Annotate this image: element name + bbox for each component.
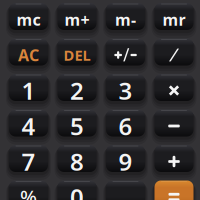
staticText: % xyxy=(20,184,37,200)
staticText: 0 xyxy=(70,181,84,200)
staticText: 2 xyxy=(70,75,84,106)
button[interactable]: 9 xyxy=(106,148,145,175)
staticText: DEL xyxy=(63,45,90,65)
button[interactable]: 7 xyxy=(9,148,48,175)
button[interactable]: . xyxy=(106,183,145,200)
staticText: 4 xyxy=(21,110,35,142)
staticText: 3 xyxy=(118,75,132,106)
button[interactable]: m- xyxy=(106,6,145,33)
button[interactable]: mc xyxy=(9,6,48,33)
button[interactable]: 5 xyxy=(57,112,96,139)
staticText: 1 xyxy=(21,75,35,106)
button[interactable]: 3 xyxy=(106,77,145,104)
button[interactable]: 2 xyxy=(57,77,96,104)
staticText: m- xyxy=(115,9,136,30)
button[interactable]: Divide xyxy=(154,41,193,68)
staticText: AC xyxy=(18,44,39,66)
staticText: 7 xyxy=(21,146,35,177)
button[interactable]: % xyxy=(9,183,48,200)
button[interactable]: Multiply xyxy=(154,77,193,104)
button[interactable]: Plus or minus xyxy=(106,41,145,68)
button[interactable]: m+ xyxy=(57,6,96,33)
button[interactable]: Minus xyxy=(154,112,193,139)
staticText: 5 xyxy=(70,110,84,142)
staticText: mc xyxy=(16,9,40,30)
staticText: m+ xyxy=(64,9,89,30)
button[interactable]: 4 xyxy=(9,112,48,139)
button[interactable]: AC xyxy=(9,41,48,68)
button[interactable]: Equals xyxy=(154,183,193,200)
button[interactable]: 0 xyxy=(57,183,96,200)
staticText: . xyxy=(122,182,128,200)
staticText: 9 xyxy=(118,146,132,177)
staticText: 6 xyxy=(118,110,132,142)
staticText: 8 xyxy=(70,146,84,177)
staticText: mr xyxy=(162,9,185,30)
button[interactable]: 1 xyxy=(9,77,48,104)
button[interactable]: 8 xyxy=(57,148,96,175)
button[interactable]: DEL xyxy=(57,41,96,68)
button[interactable]: mr xyxy=(154,6,193,33)
button[interactable]: 6 xyxy=(106,112,145,139)
button[interactable]: Plus xyxy=(154,148,193,175)
